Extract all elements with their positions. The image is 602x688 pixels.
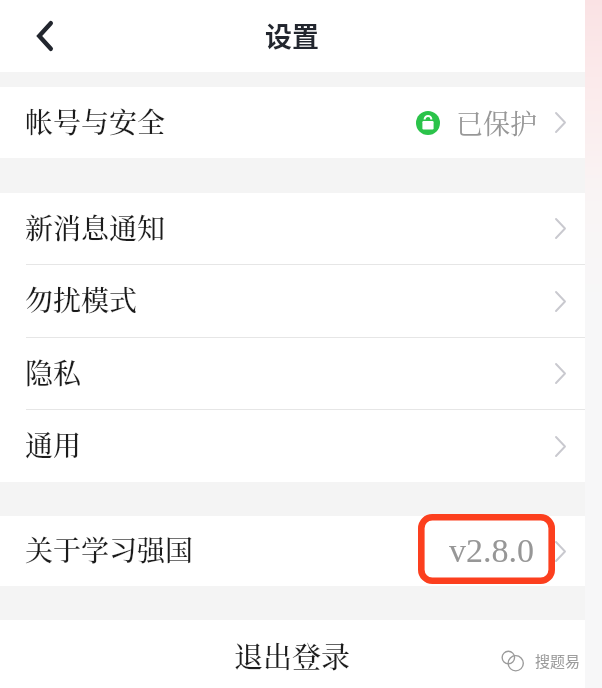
button[interactable]: Back [24,15,66,57]
staticText: 隐私 [25,352,82,392]
button[interactable]: 帐号与安全 [0,87,585,158]
staticText: 通用 [25,424,82,464]
button[interactable]: 通用 [0,410,585,482]
button[interactable]: 退出登录 [0,620,585,688]
button[interactable]: 隐私 [0,338,585,409]
staticText: 新消息通知 [25,207,166,247]
button[interactable]: 新消息通知 [0,193,585,264]
staticText: 勿扰模式 [25,279,138,319]
staticText: 帐号与安全 [25,101,166,141]
staticText: 已保护 [456,103,537,142]
staticText: v2.8.0 [449,532,534,570]
staticText: 搜题易 [535,650,581,672]
staticText: 关于学习强国 [25,529,194,569]
staticText: 退出登录 [234,635,351,677]
staticText: 设置 [265,16,319,55]
button[interactable]: 勿扰模式 [0,265,585,337]
button[interactable]: 关于学习强国 [0,516,585,586]
